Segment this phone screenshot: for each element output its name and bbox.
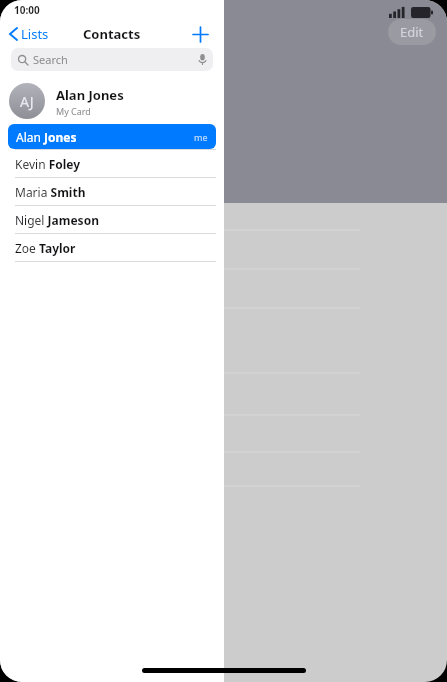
staticText: Alan Jones [56,86,124,104]
staticText: My Card [56,105,91,117]
staticText: AJ [20,92,34,111]
button[interactable]: Nigel Jameson [0,206,224,233]
button[interactable]: AJ [0,81,224,121]
staticText: Maria Smith [15,184,86,200]
button[interactable]: Maria Smith [0,178,224,205]
button[interactable]: Zoe Taylor [0,234,224,261]
staticText: Jones [0,128,56,162]
button[interactable]: Edit [388,19,436,45]
button[interactable]: Kevin Foley [0,150,224,177]
staticText: FaceTime [10,183,46,194]
staticText: Nigel Jameson [15,212,99,228]
staticText: Lists [21,25,49,43]
staticText: Zoe Taylor [15,240,76,256]
staticText: Search [33,52,68,67]
button[interactable]: Add contact [188,22,212,46]
button[interactable]: Alan Jones [8,124,216,149]
button[interactable]: Lists [10,25,49,43]
button[interactable]: Search [11,48,213,71]
staticText: Kevin Foley [15,156,81,172]
staticText: me [194,131,208,143]
staticText: Contacts [83,25,141,43]
button[interactable]: mail [71,163,143,201]
staticText: Alan Jones [16,129,77,145]
button[interactable]: FaceTime [0,163,64,201]
staticText: 10:00 [14,3,40,17]
staticText: AJ [0,56,24,98]
staticText: Edit [400,23,424,41]
